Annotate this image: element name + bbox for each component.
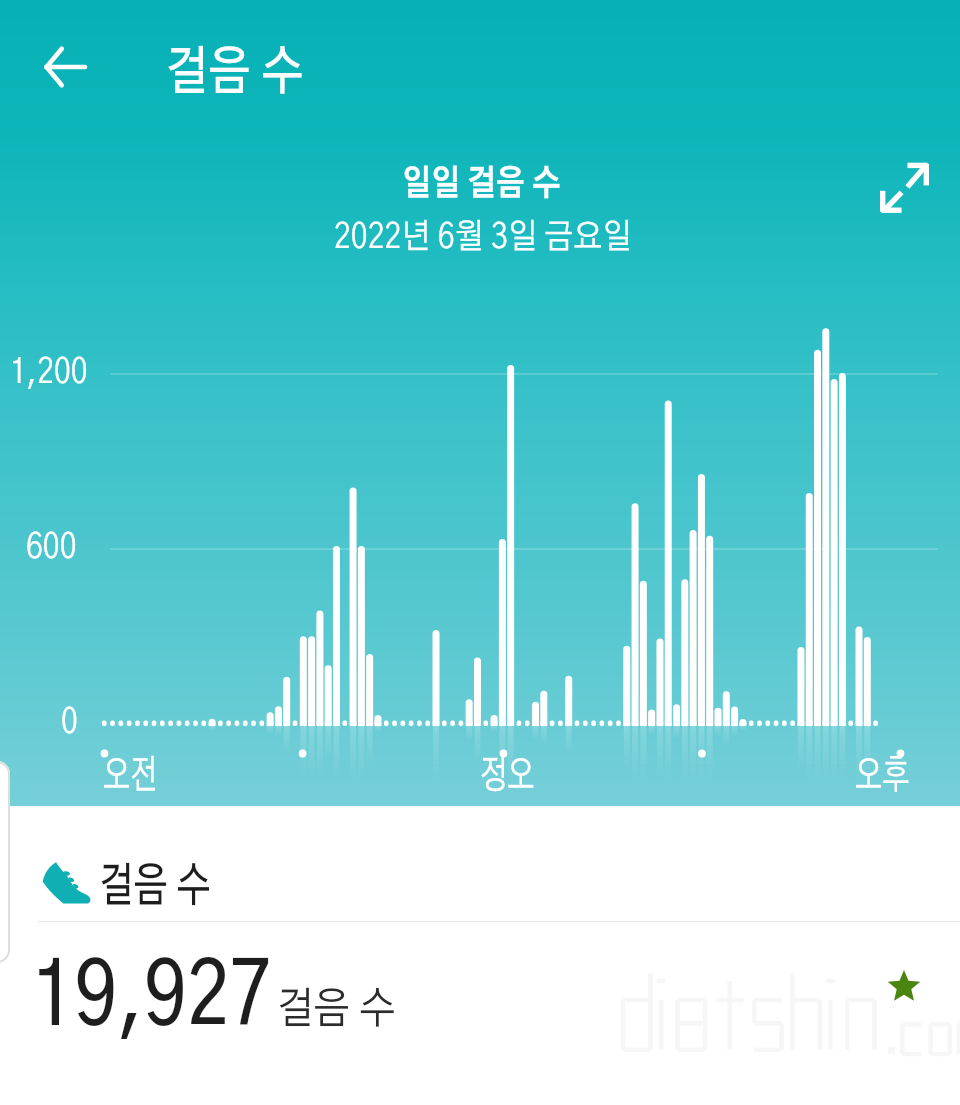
staticText: 걸음 수 <box>277 988 396 1032</box>
staticText: 1,200 <box>10 356 88 390</box>
staticText: 정오 <box>480 756 535 796</box>
button[interactable]: Back <box>26 28 104 106</box>
button[interactable]: 걸음 수 <box>0 806 960 921</box>
staticText: 걸음 수 <box>166 47 304 100</box>
staticText: 600 <box>26 531 77 565</box>
staticText: 오후 <box>855 756 910 796</box>
button[interactable]: Expand chart <box>862 145 946 229</box>
staticText: 0 <box>61 706 78 740</box>
button[interactable]: Favorite <box>887 970 921 1004</box>
staticText: 일일 걸음 수 <box>402 167 561 202</box>
staticText: 오전 <box>103 756 158 796</box>
staticText: 걸음 수 <box>99 864 211 911</box>
staticText: 2022년 6월 3일 금요일 <box>334 220 632 255</box>
staticText: 19,927 <box>32 954 273 1042</box>
